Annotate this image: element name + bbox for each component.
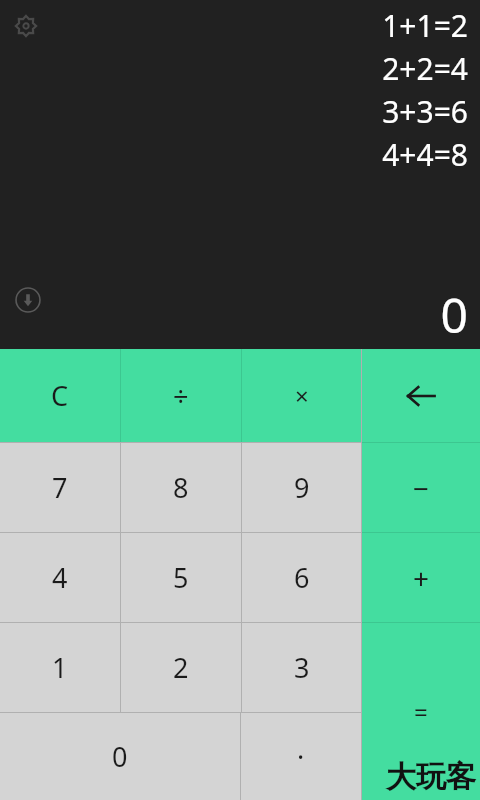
button[interactable]: 0 <box>0 713 240 800</box>
button[interactable]: Settings <box>8 8 44 44</box>
button[interactable]: 3 <box>242 623 361 712</box>
staticText: 1 <box>52 649 68 686</box>
button[interactable]: = <box>362 623 480 800</box>
staticText: 4 <box>52 559 68 596</box>
button[interactable]: · <box>241 713 361 800</box>
button[interactable]: 7 <box>0 443 120 532</box>
staticText: × <box>295 379 309 412</box>
staticText: 2+2=4 <box>382 48 468 89</box>
staticText: 5 <box>173 559 189 596</box>
staticText: 2 <box>173 649 189 686</box>
staticText: ÷ <box>173 377 189 414</box>
button[interactable]: × <box>242 349 361 442</box>
staticText: 7 <box>52 469 68 506</box>
staticText: 0 <box>112 738 128 775</box>
button[interactable]: 5 <box>121 533 241 622</box>
staticText: 8 <box>173 469 189 506</box>
staticText: − <box>413 469 430 507</box>
button[interactable]: 6 <box>242 533 361 622</box>
staticText: 3 <box>294 649 310 686</box>
staticText: = <box>414 695 428 728</box>
button[interactable]: 2 <box>121 623 241 712</box>
staticText: + <box>413 559 430 597</box>
staticText: 3+3=6 <box>382 91 468 132</box>
staticText: 1+1=2 <box>382 5 468 46</box>
staticText: 4+4=8 <box>382 134 468 175</box>
button[interactable]: 1+1=2 <box>382 4 468 176</box>
button[interactable]: Download history <box>10 282 46 318</box>
staticText: 0 <box>440 282 468 347</box>
staticText: 6 <box>294 559 310 596</box>
button[interactable]: − <box>362 443 480 532</box>
button[interactable]: 9 <box>242 443 361 532</box>
button[interactable]: ÷ <box>121 349 241 442</box>
button[interactable]: Backspace <box>362 349 480 442</box>
staticText: 大玩客 <box>386 758 476 796</box>
button[interactable]: C <box>0 349 120 442</box>
staticText: · <box>297 738 305 775</box>
button[interactable]: 4 <box>0 533 120 622</box>
staticText: C <box>51 377 69 414</box>
button[interactable]: + <box>362 533 480 622</box>
button[interactable]: 1 <box>0 623 120 712</box>
staticText: 9 <box>294 469 310 506</box>
button[interactable]: 8 <box>121 443 241 532</box>
